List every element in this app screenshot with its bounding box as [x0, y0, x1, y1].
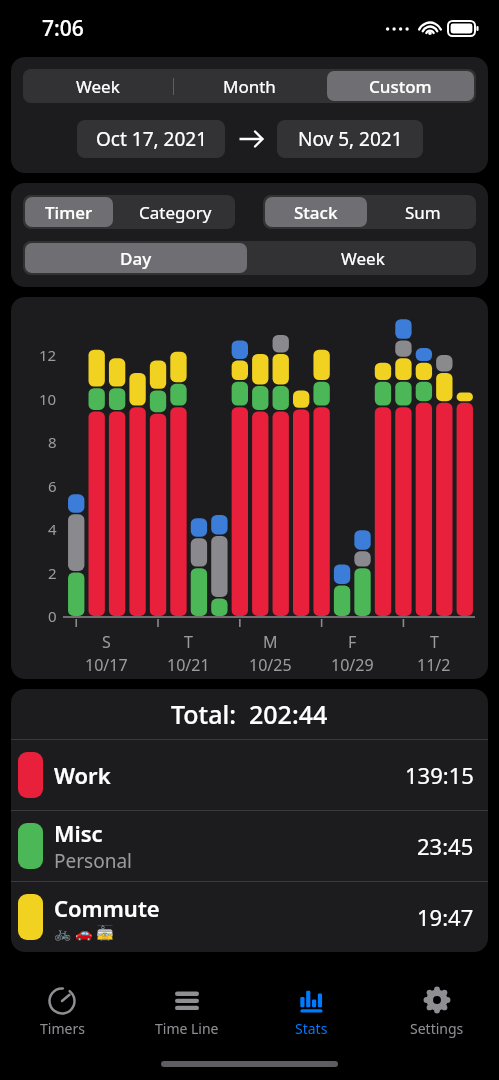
staticText: 23:45 [417, 831, 474, 861]
button[interactable]: Sum [371, 197, 474, 227]
button[interactable]: Month [176, 71, 323, 101]
button[interactable]: Week [25, 71, 171, 101]
staticText: Work [54, 760, 111, 790]
staticText: 4 [48, 519, 57, 539]
staticText: Stack [294, 201, 338, 224]
staticText: Week [76, 75, 120, 98]
button[interactable]: Stats [249, 975, 374, 1047]
staticText: Personal [54, 848, 132, 874]
button[interactable]: Misc [11, 811, 488, 881]
button[interactable]: Week [251, 243, 474, 273]
staticText: Nov 5, 2021 [298, 126, 403, 152]
button[interactable]: Timers [0, 975, 124, 1047]
staticText: Commute [54, 893, 160, 923]
staticText: Time Line [155, 1019, 219, 1038]
button[interactable]: Oct 17, 2021 [77, 120, 225, 158]
staticText: 10/17 [85, 654, 128, 676]
staticText: 10/29 [331, 654, 374, 676]
staticText: 139:15 [405, 760, 474, 790]
staticText: Settings [410, 1019, 464, 1038]
staticText: M [263, 631, 278, 653]
staticText: T [430, 631, 439, 653]
button[interactable]: Work [11, 740, 488, 810]
staticText: T [184, 631, 193, 653]
staticText: 10/25 [249, 654, 292, 676]
staticText: 10/21 [167, 654, 210, 676]
staticText: 8 [48, 432, 57, 452]
staticText: Timer [45, 201, 93, 224]
button[interactable]: Stack [265, 197, 367, 227]
staticText: 11/2 [417, 654, 451, 676]
staticText: Month [223, 75, 276, 98]
staticText: S [102, 631, 111, 653]
button[interactable]: Day [25, 243, 247, 273]
button[interactable]: Commute [11, 882, 488, 952]
staticText: 🚲 🚗 🚋 [54, 923, 114, 942]
staticText: Day [120, 247, 152, 270]
staticText: Misc [54, 818, 103, 848]
staticText: 6 [48, 476, 57, 496]
staticText: 10 [39, 389, 57, 409]
button[interactable]: Custom [327, 71, 474, 101]
staticText: Oct 17, 2021 [96, 126, 207, 152]
staticText: 19:47 [417, 902, 474, 932]
other: to [238, 130, 265, 148]
button[interactable]: Nov 5, 2021 [277, 120, 423, 158]
staticText: 7:06 [42, 14, 84, 43]
staticText: Stats [295, 1019, 328, 1038]
staticText: Custom [369, 75, 432, 98]
staticText: Week [341, 247, 385, 270]
staticText: Timers [40, 1019, 85, 1038]
button[interactable]: Settings [374, 975, 499, 1047]
staticText: F [348, 631, 357, 653]
button[interactable]: Time Line [124, 975, 249, 1047]
staticText: Total: 202:44 [171, 697, 328, 731]
button[interactable]: Timer [25, 197, 113, 227]
staticText: 2 [48, 563, 57, 583]
staticText: 12 [39, 345, 57, 365]
staticText: 0 [48, 606, 57, 626]
staticText: Category [139, 201, 212, 224]
staticText: Sum [405, 201, 441, 224]
button[interactable]: Category [117, 197, 233, 227]
